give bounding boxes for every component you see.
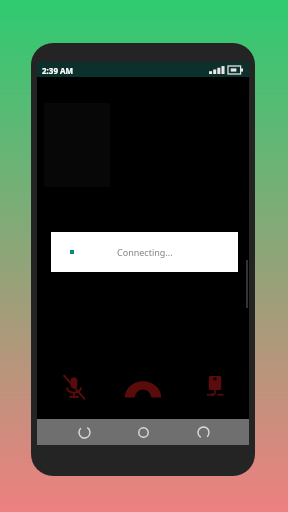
- button[interactable]: Connecting...: [51, 232, 238, 272]
- button[interactable]: Transfer call to device: [193, 365, 237, 409]
- staticText: Connecting...: [117, 246, 173, 258]
- staticText: 2:39 AM: [42, 65, 74, 76]
- button[interactable]: Recent apps: [190, 419, 216, 445]
- button[interactable]: Home: [130, 419, 156, 445]
- button[interactable]: Back: [71, 419, 97, 445]
- button[interactable]: Mute microphone: [52, 365, 96, 409]
- button[interactable]: End call: [121, 365, 165, 409]
